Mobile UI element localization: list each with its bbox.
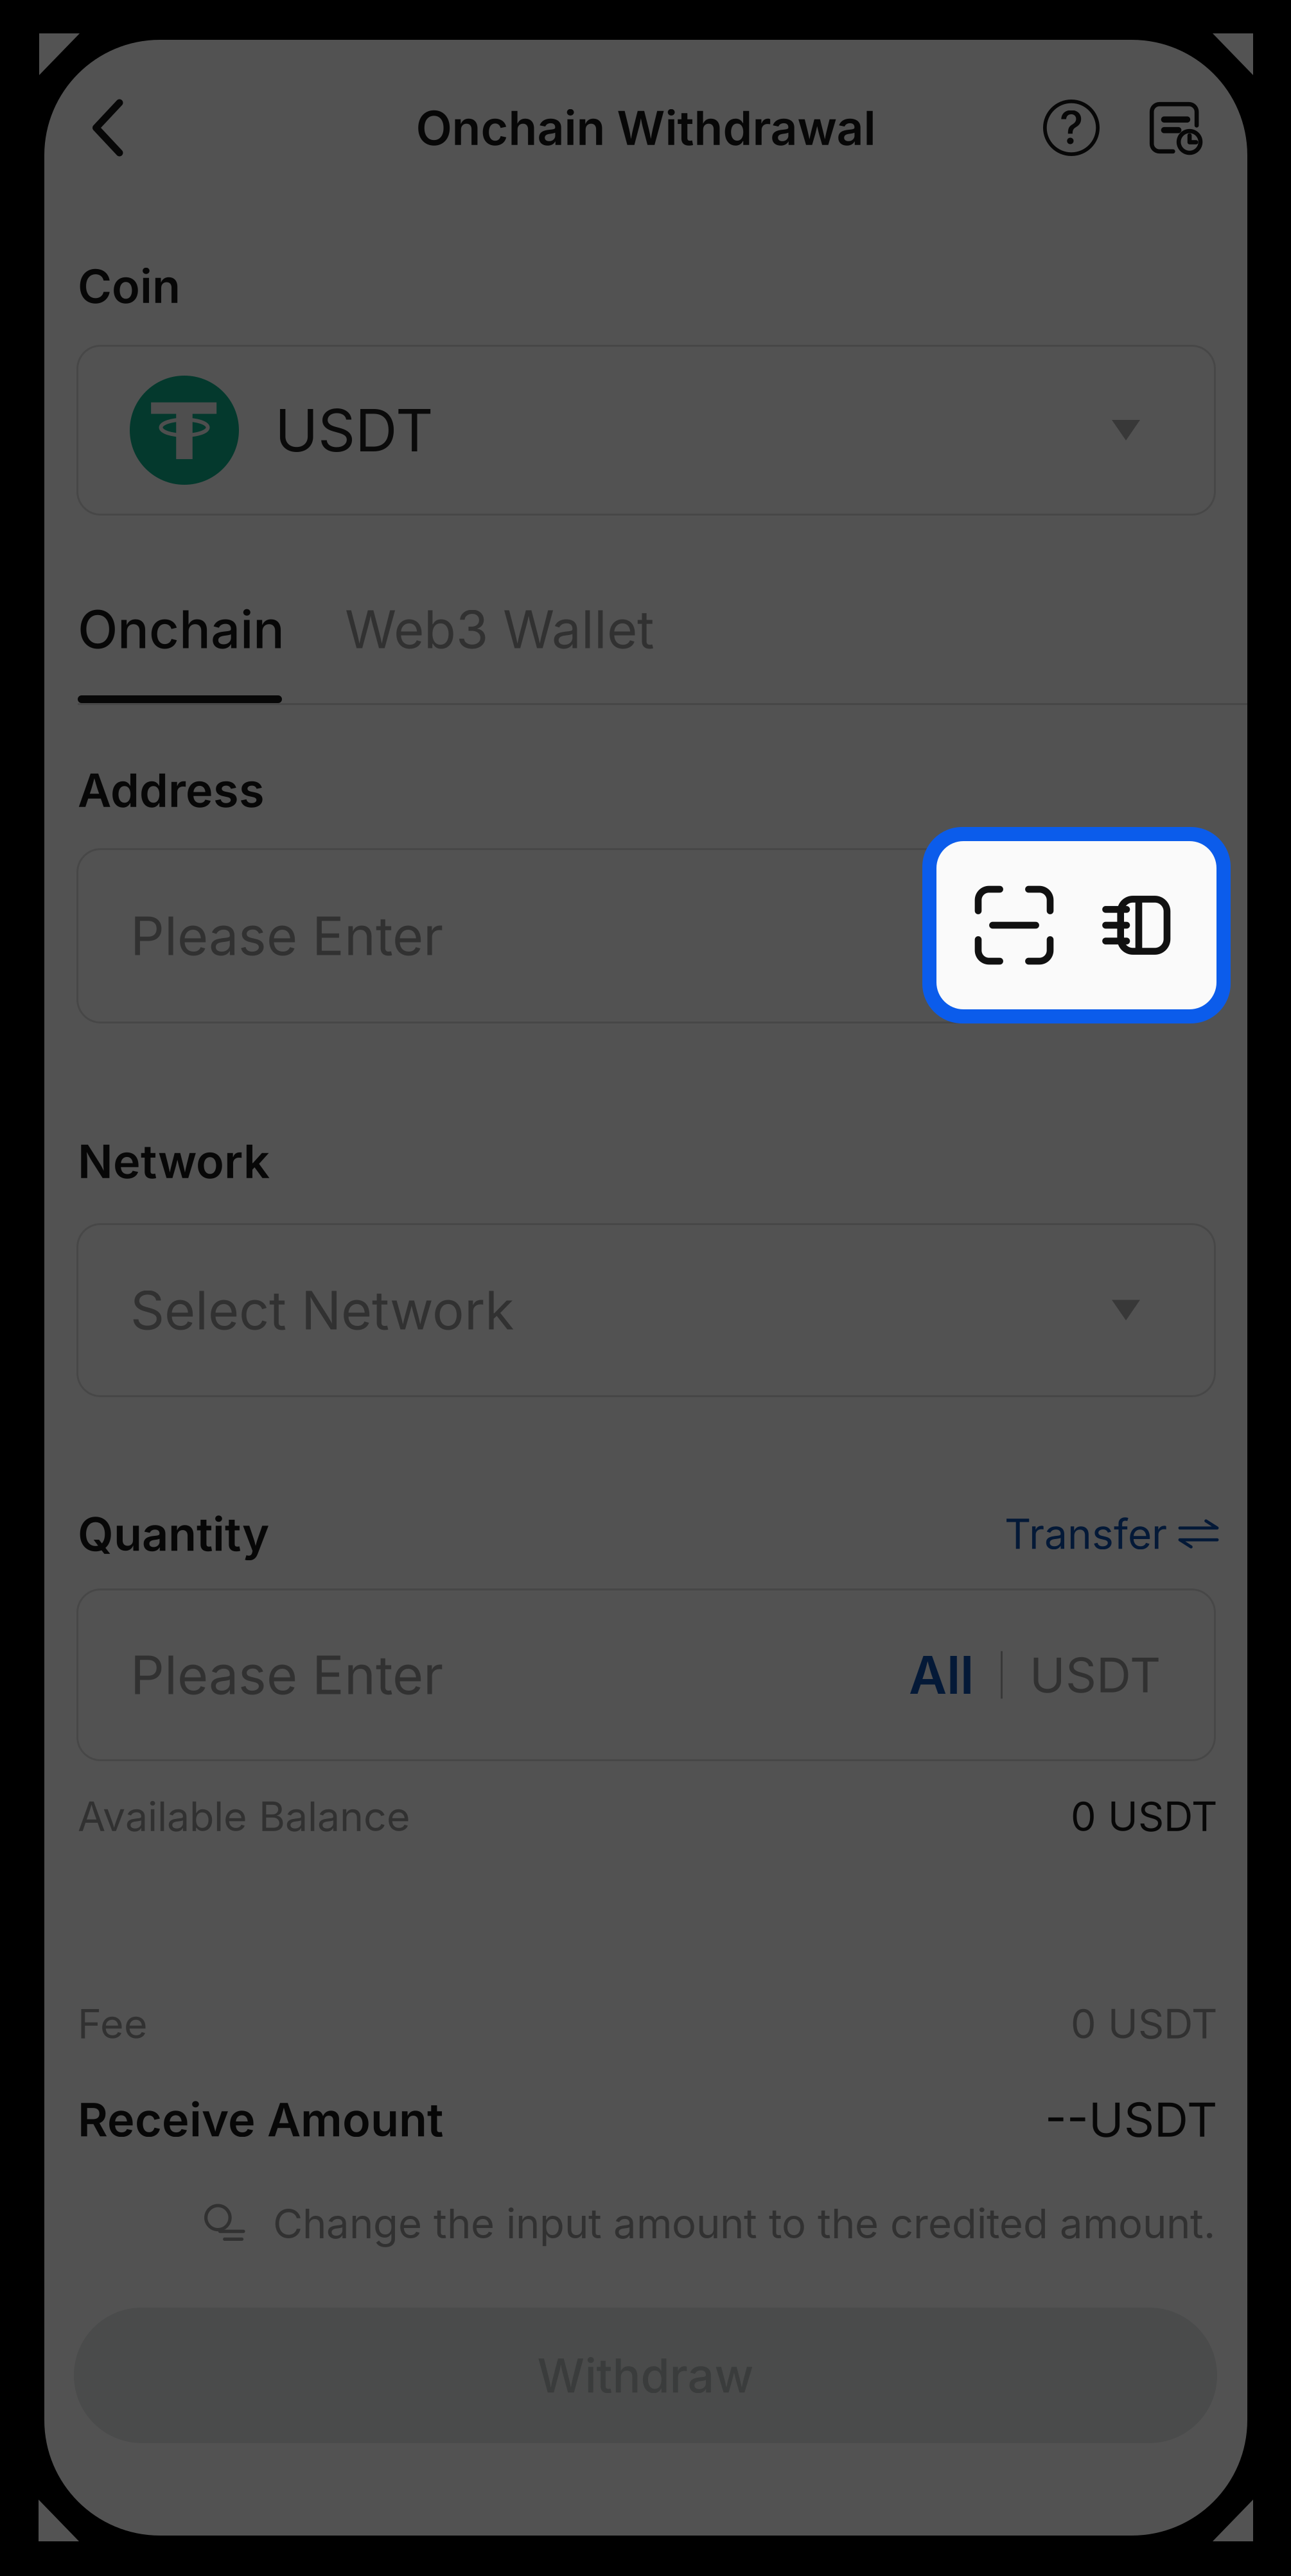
button[interactable]: Onchain xyxy=(78,600,285,659)
button[interactable]: Transfer xyxy=(1005,1509,1217,1559)
staticText: USDT xyxy=(275,395,434,465)
staticText: ? xyxy=(1059,100,1083,154)
staticText: Transfer xyxy=(1005,1509,1167,1559)
staticText: 0 USDT xyxy=(1071,1792,1217,1841)
staticText: Change the input amount to the credited … xyxy=(273,2199,1215,2248)
button[interactable]: Scan address or pick from address book xyxy=(922,827,1231,1023)
staticText: Network xyxy=(78,1133,270,1189)
staticText: Quantity xyxy=(78,1506,269,1562)
staticText: Withdraw xyxy=(537,2347,754,2404)
staticText: Onchain xyxy=(78,598,285,661)
staticText: --USDT xyxy=(1045,2091,1217,2148)
staticText: Web3 Wallet xyxy=(345,598,654,661)
staticText: Available Balance xyxy=(78,1792,410,1841)
staticText: Please Enter xyxy=(130,904,443,968)
staticText: Receive Amount xyxy=(78,2091,443,2147)
button[interactable]: Help xyxy=(1032,89,1111,167)
button[interactable]: Back xyxy=(69,91,143,165)
button[interactable]: Select Network xyxy=(76,1223,1216,1397)
button[interactable]: All xyxy=(909,1643,974,1706)
button[interactable]: Web3 Wallet xyxy=(345,600,654,659)
button[interactable]: USDT xyxy=(76,345,1216,516)
staticText: All xyxy=(909,1643,974,1706)
staticText: USDT xyxy=(1030,1646,1161,1704)
staticText: Select Network xyxy=(130,1278,514,1342)
staticText: Onchain Withdrawal xyxy=(416,99,876,156)
button[interactable]: Withdrawal records xyxy=(1136,89,1215,167)
staticText: Address xyxy=(78,762,265,818)
staticText: Fee xyxy=(78,1999,148,2048)
staticText: 0 USDT xyxy=(1071,1999,1217,2048)
staticText: Coin xyxy=(78,258,180,314)
staticText: Please Enter xyxy=(130,1643,443,1707)
